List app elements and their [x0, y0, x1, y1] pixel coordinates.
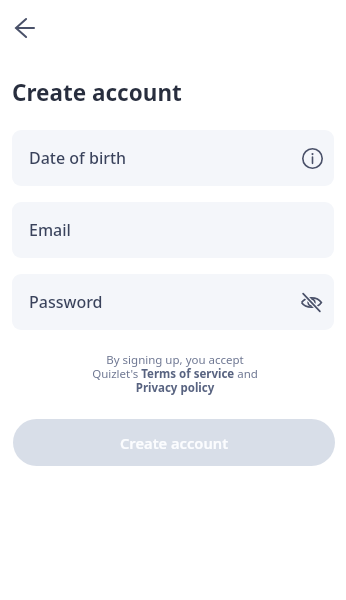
button[interactable]: Back — [8, 11, 41, 44]
button[interactable]: Password — [12, 274, 334, 330]
staticText: Create account — [120, 433, 229, 453]
button[interactable]: Email — [12, 202, 334, 258]
button[interactable]: Show password — [298, 289, 324, 315]
staticText: Password — [29, 291, 103, 313]
staticText: Date of birth — [29, 147, 127, 169]
staticText: Email — [29, 219, 71, 241]
button[interactable]: Privacy policy — [136, 377, 214, 391]
button[interactable]: Date of birth — [12, 130, 334, 186]
button[interactable]: Terms of service — [140, 363, 234, 377]
staticText: By signing up, you accept Quizlet's Term… — [84, 352, 266, 395]
staticText: Create account — [12, 77, 182, 108]
button[interactable]: Create account — [13, 419, 335, 466]
button[interactable]: Date of birth info — [300, 146, 324, 170]
